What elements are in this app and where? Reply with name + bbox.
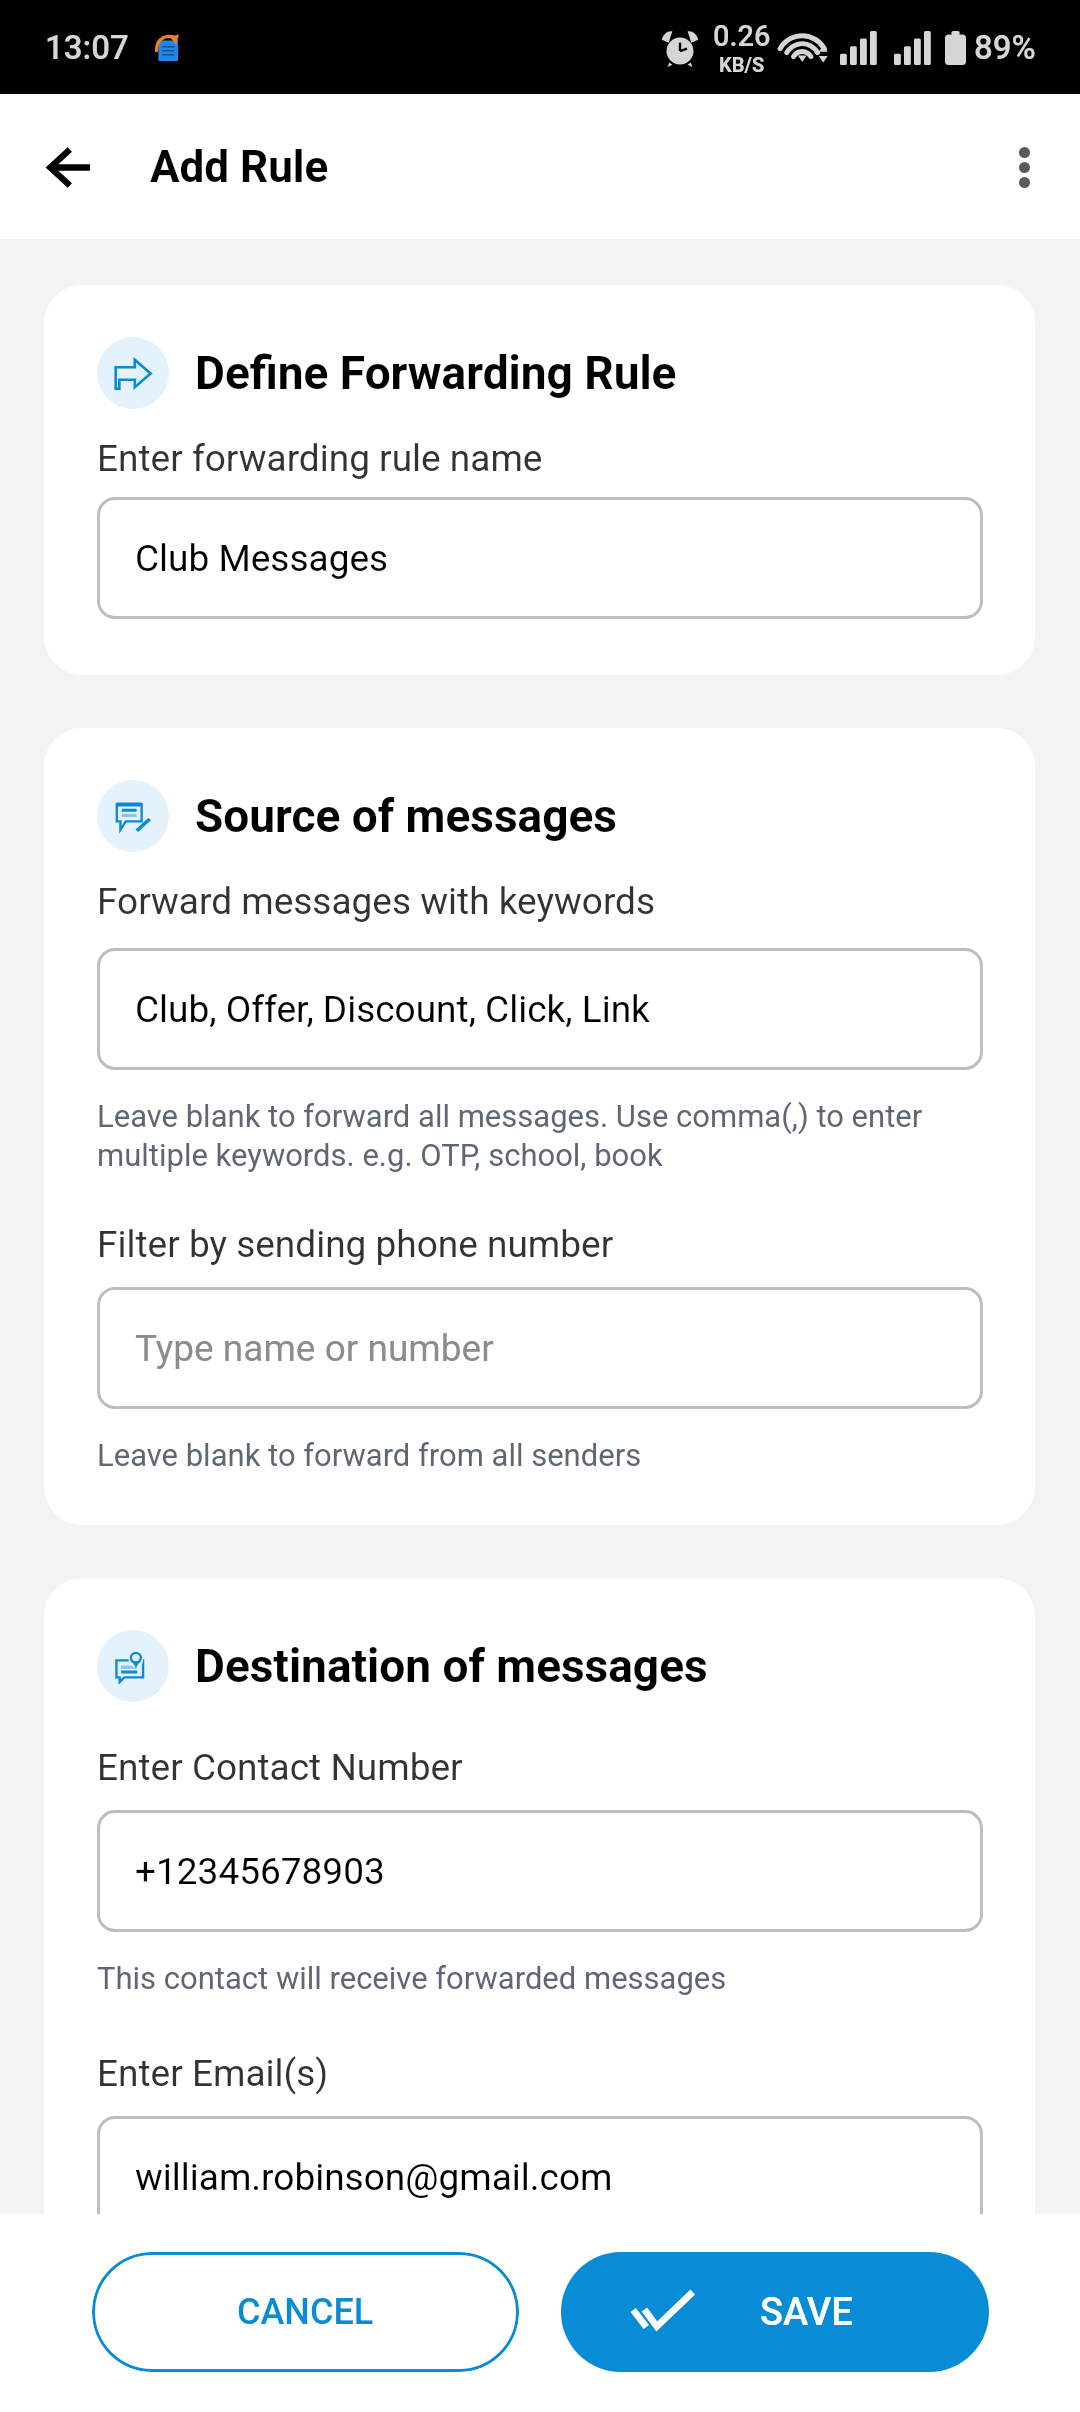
button[interactable]: SAVE: [561, 2252, 989, 2372]
staticText: 89%: [974, 28, 1036, 67]
staticText: Add Rule: [150, 141, 329, 193]
staticText: william.robinson@gmail.com: [135, 2156, 613, 2199]
staticText: Club, Offer, Discount, Click, Link: [135, 988, 650, 1031]
button[interactable]: william.robinson@gmail.com: [97, 2116, 983, 2214]
staticText: Destination of messages: [195, 1639, 708, 1693]
staticText: Leave blank to forward all messages. Use…: [97, 1098, 983, 1173]
button[interactable]: Type name or number: [97, 1287, 983, 1409]
staticText: Enter forwarding rule name: [97, 437, 543, 480]
staticText: SAVE: [760, 2290, 853, 2335]
staticText: 13:07: [45, 28, 129, 67]
staticText: Club Messages: [135, 537, 389, 580]
staticText: Enter Contact Number: [97, 1746, 463, 1789]
staticText: Source of messages: [195, 789, 617, 843]
staticText: Forward messages with keywords: [97, 880, 656, 923]
staticText: Define Forwarding Rule: [195, 346, 677, 400]
staticText: Type name or number: [135, 1327, 494, 1370]
button[interactable]: More options: [976, 119, 1072, 215]
button[interactable]: Club, Offer, Discount, Click, Link: [97, 948, 983, 1070]
button[interactable]: Club Messages: [97, 497, 983, 619]
staticText: CANCEL: [237, 2291, 374, 2333]
button[interactable]: Back: [19, 117, 119, 217]
button[interactable]: CANCEL: [92, 2252, 519, 2372]
staticText: +12345678903: [135, 1850, 385, 1893]
button[interactable]: +12345678903: [97, 1810, 983, 1932]
staticText: Enter Email(s): [97, 2052, 329, 2095]
staticText: This contact will receive forwarded mess…: [97, 1960, 727, 1996]
staticText: Filter by sending phone number: [97, 1223, 614, 1266]
staticText: 0.26: [713, 19, 771, 53]
staticText: KB/S: [719, 53, 765, 76]
staticText: Leave blank to forward from all senders: [97, 1437, 642, 1473]
